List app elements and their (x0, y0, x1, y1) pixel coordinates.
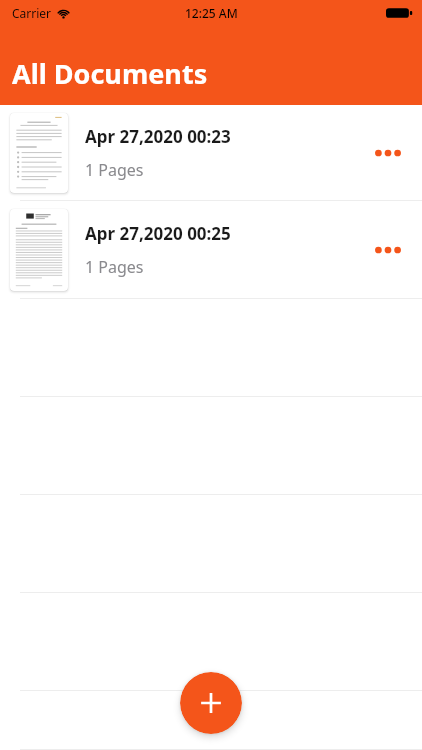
staticText: Apr 27,2020 00:25 (85, 222, 231, 245)
button[interactable]: More options (366, 131, 410, 175)
button[interactable]: Add document (180, 672, 242, 734)
staticText: Apr 27,2020 00:23 (85, 125, 231, 148)
staticText: All Documents (12, 55, 208, 92)
staticText: 1 Pages (85, 256, 144, 278)
button[interactable]: Apr 27,2020 00:23 (0, 105, 422, 201)
button[interactable]: Apr 27,2020 00:25 (0, 201, 422, 299)
staticText: 1 Pages (85, 159, 144, 181)
staticText: Carrier (12, 5, 52, 21)
staticText: 12:25 AM (185, 5, 238, 21)
button[interactable]: More options (366, 228, 410, 272)
